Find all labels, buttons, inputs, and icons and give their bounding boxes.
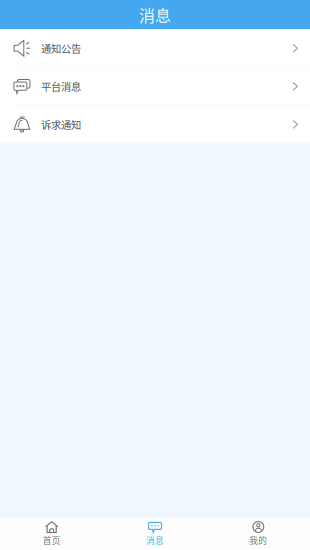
- staticText: 消息: [139, 3, 171, 26]
- button[interactable]: 我的: [207, 518, 310, 550]
- button[interactable]: 平台消息: [0, 68, 310, 105]
- staticText: 我的: [249, 534, 267, 546]
- staticText: 诉求通知: [41, 117, 81, 132]
- button[interactable]: 诉求通知: [0, 106, 310, 143]
- button[interactable]: 通知公告: [0, 29, 310, 67]
- staticText: 通知公告: [41, 41, 81, 56]
- staticText: 首页: [43, 534, 61, 546]
- button[interactable]: 消息: [103, 518, 207, 550]
- staticText: 平台消息: [41, 79, 81, 94]
- button[interactable]: 首页: [0, 518, 103, 550]
- staticText: 消息: [146, 534, 164, 546]
